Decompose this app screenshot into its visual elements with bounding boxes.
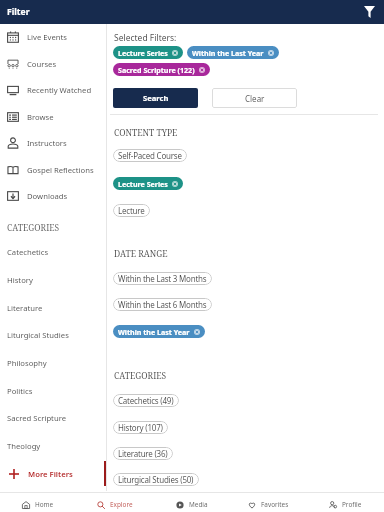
staticText: DATE RANGE [114,248,168,260]
staticText: Clear [245,93,265,104]
staticText: Sacred Scripture (122) [118,65,195,75]
button[interactable]: Recently Watched [0,77,106,103]
button[interactable]: History (107) [113,421,168,434]
button[interactable]: Lecture Series [113,177,183,190]
staticText: History [7,275,33,285]
button[interactable]: Clear [212,88,297,108]
button[interactable]: Theology [0,432,106,459]
button[interactable]: Downloads [0,183,106,209]
button[interactable]: Gospel Reflections [0,157,106,183]
button[interactable]: Profile [307,496,384,512]
staticText: Gospel Reflections [27,165,94,175]
staticText: Profile [342,500,362,509]
staticText: Instructors [27,138,67,148]
staticText: Catechetics (49) [118,395,174,406]
staticText: CONTENT TYPE [114,127,178,139]
staticText: Within the Last Year [118,327,190,337]
button[interactable]: Live Events [0,24,106,50]
staticText: Media [189,500,208,509]
button[interactable]: Explore [76,496,153,512]
button[interactable]: Within the Last Year [113,325,205,338]
staticText: Catechetics [7,247,49,257]
button[interactable]: Catechetics [0,238,106,265]
button[interactable]: Filter options [361,4,377,20]
staticText: Courses [27,59,57,69]
staticText: Liturgical Studies (50) [118,474,194,485]
staticText: Theology [7,441,41,451]
button[interactable]: Catechetics (49) [113,394,179,407]
staticText: Lecture Series [118,48,168,58]
button[interactable]: Liturgical Studies [0,321,106,348]
button[interactable]: Lecture Series [113,46,183,59]
button[interactable]: Lecture [113,204,150,217]
staticText: Home [35,500,54,509]
button[interactable]: Search [113,88,198,108]
staticText: Live Events [27,32,67,42]
staticText: CATEGORIES [114,370,167,382]
button[interactable]: Within the Last 6 Months [113,298,212,311]
button[interactable]: Politics [0,377,106,404]
staticText: Filter [7,6,30,18]
staticText: Selected Filters: [114,32,177,44]
button[interactable]: Favorites [230,496,307,512]
button[interactable]: More Filters [0,461,106,487]
button[interactable]: Philosophy [0,349,106,376]
staticText: Liturgical Studies [7,330,69,340]
staticText: Search [143,93,169,103]
button[interactable]: Browse [0,104,106,130]
button[interactable]: Media [153,496,230,512]
button[interactable]: History [0,266,106,293]
button[interactable]: Literature [0,294,106,321]
staticText: More Filters [28,469,73,479]
button[interactable]: Courses [0,51,106,77]
button[interactable]: Self-Paced Course [113,149,187,162]
staticText: Downloads [27,191,68,201]
button[interactable]: Literature (36) [113,447,173,460]
staticText: Lecture [118,205,145,216]
staticText: Browse [27,112,54,122]
staticText: Literature (36) [118,448,168,459]
button[interactable]: Instructors [0,130,106,156]
staticText: Self-Paced Course [118,150,182,161]
staticText: Philosophy [7,358,47,368]
button[interactable]: Sacred Scripture [0,404,106,431]
staticText: CATEGORIES [7,222,60,234]
button[interactable]: Liturgical Studies (50) [113,473,199,486]
button[interactable]: Sacred Scripture (122) [113,63,210,76]
staticText: Recently Watched [27,85,92,95]
staticText: Politics [7,386,33,396]
button[interactable]: Home [0,496,76,512]
staticText: Explore [110,500,133,509]
staticText: Literature [7,303,43,313]
button[interactable]: Within the Last Year [187,46,279,59]
button[interactable]: Within the Last 3 Months [113,272,212,285]
staticText: Within the Last 3 Months [118,273,207,284]
staticText: Within the Last Year [192,48,264,58]
staticText: Within the Last 6 Months [118,299,207,310]
staticText: History (107) [118,422,163,433]
staticText: Favorites [261,500,289,509]
staticText: Lecture Series [118,179,168,189]
staticText: Sacred Scripture [7,413,66,423]
